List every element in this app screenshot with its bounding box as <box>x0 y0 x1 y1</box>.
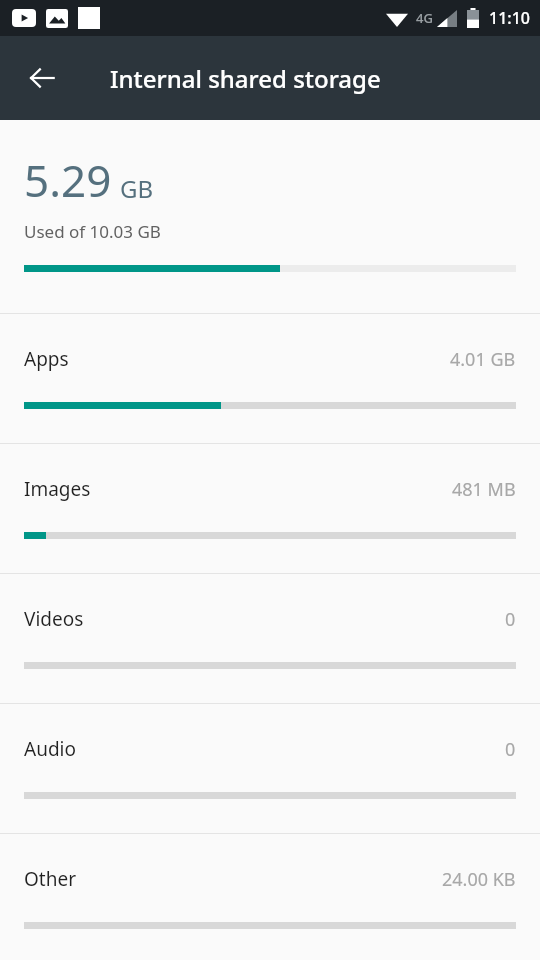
button[interactable]: Images <box>0 444 540 573</box>
staticText: Internal shared storage <box>110 62 381 95</box>
staticText: 0 <box>505 607 516 632</box>
staticText: Videos <box>24 606 84 632</box>
staticText: GB <box>120 172 154 205</box>
staticText: Apps <box>24 346 69 372</box>
staticText: Images <box>24 476 91 502</box>
staticText: 4.01 GB <box>450 347 516 372</box>
button[interactable]: Videos <box>0 574 540 703</box>
button[interactable]: Back <box>10 46 74 110</box>
button[interactable]: Audio <box>0 704 540 833</box>
staticText: 5.29 <box>24 150 112 210</box>
button[interactable]: 5.29 <box>0 120 540 313</box>
staticText: 24.00 KB <box>442 867 516 892</box>
staticText: 0 <box>505 737 516 762</box>
staticText: 11:10 <box>489 7 530 29</box>
button[interactable]: Other <box>0 834 540 960</box>
staticText: 4G <box>416 9 433 27</box>
staticText: Audio <box>24 736 76 762</box>
button[interactable]: Apps <box>0 314 540 443</box>
staticText: Used of 10.03 GB <box>24 220 161 243</box>
staticText: Other <box>24 866 77 892</box>
staticText: 481 MB <box>452 477 516 502</box>
